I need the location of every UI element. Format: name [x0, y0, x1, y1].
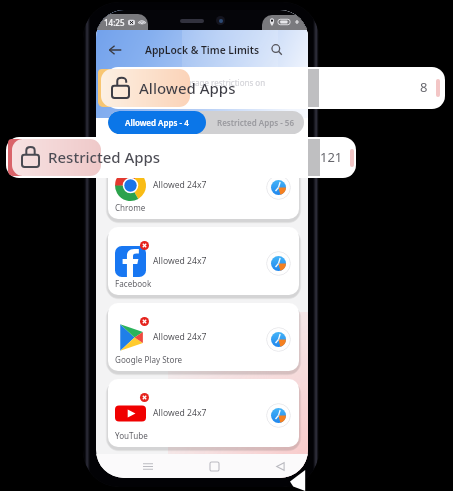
staticText: 14:25	[104, 17, 125, 28]
button[interactable]: Set time limit	[266, 251, 291, 276]
staticText: Allowed Apps	[139, 78, 236, 98]
button[interactable]: Set time limit	[266, 403, 291, 428]
button[interactable]: Back	[104, 39, 126, 61]
button[interactable]	[12, 139, 101, 176]
button[interactable]: Set time limit	[266, 327, 291, 352]
staticText: 121	[320, 148, 343, 166]
staticText: Restricted Apps	[48, 147, 161, 167]
staticText: Google Play Store	[115, 354, 183, 365]
button[interactable]: Allowed 24x7	[108, 379, 299, 447]
button[interactable]	[101, 69, 190, 107]
staticText: Restricted Apps - 56	[217, 117, 294, 128]
button[interactable]: Allowed 24x7	[108, 151, 299, 219]
staticText: Allowed 24x7	[153, 407, 207, 419]
staticText: Allowed 24x7	[153, 179, 207, 191]
button[interactable]: Back	[270, 456, 290, 476]
button[interactable]: Allowed 24x7	[108, 227, 299, 295]
staticText: Facebook	[115, 278, 152, 289]
staticText: Allowed Apps - 4	[125, 117, 189, 128]
staticText: Set time and usage restrictions on	[137, 77, 266, 88]
button[interactable]: 8	[105, 67, 445, 109]
staticText: Allowed 24x7	[153, 255, 207, 267]
staticText: 8	[420, 78, 428, 96]
staticText: AppLock & Time Limits	[145, 43, 259, 57]
button[interactable]: Allowed Apps - 4	[108, 111, 206, 134]
staticText: Chrome	[115, 202, 146, 213]
button[interactable]: Search	[267, 40, 287, 60]
button[interactable]: Restricted Apps - 56	[206, 111, 304, 134]
staticText: Allowed 24x7	[153, 331, 207, 343]
staticText: YouTube	[115, 430, 148, 441]
staticText: Set time and usage restrictions on	[138, 76, 267, 87]
button[interactable]: Home	[204, 456, 224, 476]
button[interactable]: Set time limit	[266, 175, 291, 200]
button[interactable]: Recents	[138, 456, 158, 476]
button[interactable]: 121	[6, 137, 356, 178]
button[interactable]: Allowed 24x7	[108, 303, 299, 371]
